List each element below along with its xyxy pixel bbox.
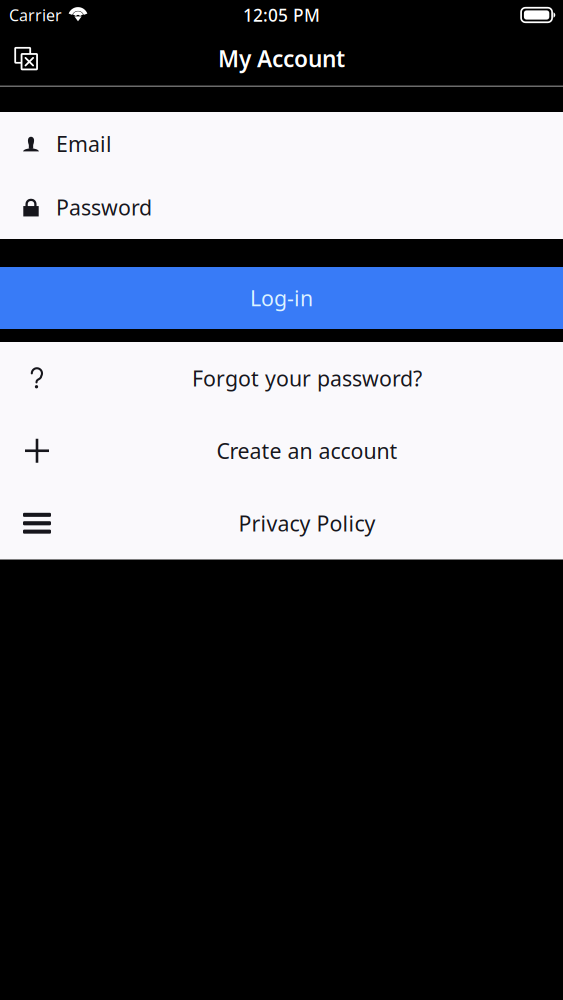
button[interactable]: Privacy Policy (0, 487, 563, 559)
staticText: Forgot your password? (192, 364, 422, 392)
staticText: Password (56, 193, 152, 221)
staticText: Privacy Policy (238, 509, 375, 537)
button[interactable]: Log-in (0, 267, 563, 329)
staticText: Email (56, 130, 112, 158)
button[interactable]: Close (13, 45, 39, 71)
staticText: Log-in (250, 284, 313, 312)
staticText: Create an account (216, 437, 397, 465)
staticText: My Account (218, 43, 345, 73)
staticText: 12:05 PM (243, 3, 320, 26)
staticText: Carrier (9, 4, 62, 26)
button[interactable]: Create an account (0, 414, 563, 487)
button[interactable]: Forgot your password? (0, 342, 563, 414)
